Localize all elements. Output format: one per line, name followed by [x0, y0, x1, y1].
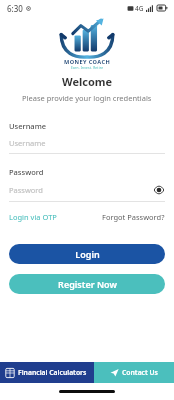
staticText: Register Now: [58, 278, 117, 290]
staticText: Financial Calculators: [18, 368, 87, 377]
button[interactable]: Forgot Password?: [102, 212, 165, 222]
staticText: Login: [75, 248, 100, 260]
staticText: Password: [9, 185, 153, 195]
staticText: Please provide your login credentials: [22, 93, 152, 103]
button[interactable]: Login via OTP: [9, 212, 57, 222]
button[interactable]: Register Now: [9, 274, 165, 294]
staticText: Username: [9, 121, 47, 131]
staticText: Welcome: [62, 74, 113, 89]
button[interactable]: Login: [9, 244, 165, 264]
staticText: Password: [9, 167, 44, 177]
staticText: 4G: [135, 4, 144, 13]
staticText: Contact Us: [122, 368, 158, 377]
staticText: Username: [9, 138, 165, 148]
button[interactable]: Show password: [153, 184, 165, 196]
button[interactable]: Contact Us: [94, 362, 174, 383]
staticText: 6:30: [7, 3, 23, 14]
staticText: MONEY COACH: [64, 58, 111, 66]
staticText: Login via OTP: [9, 212, 57, 222]
staticText: Forgot Password?: [102, 212, 165, 222]
button[interactable]: Financial Calculators: [0, 362, 94, 383]
staticText: Earn. Invest. Retire: [71, 66, 104, 70]
